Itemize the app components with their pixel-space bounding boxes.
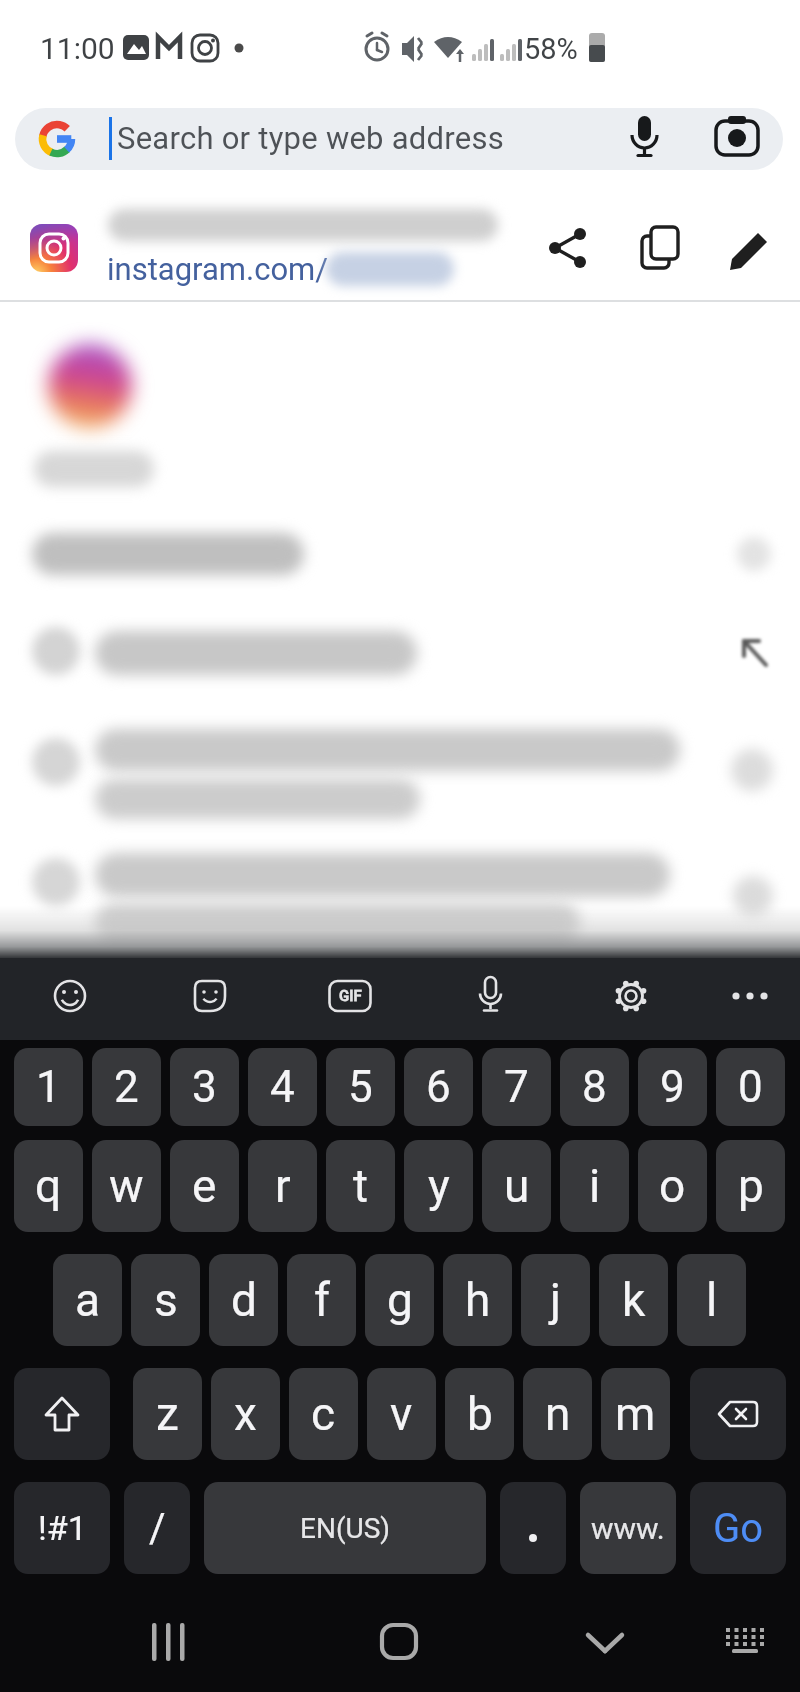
staticText: w <box>109 1159 144 1213</box>
button[interactable]: 5 <box>326 1048 395 1126</box>
button[interactable] <box>574 1612 638 1672</box>
staticText: instagram.com/ <box>107 251 329 287</box>
button[interactable]: j <box>521 1254 590 1346</box>
button[interactable] <box>15 108 783 170</box>
staticText: y <box>428 1159 450 1213</box>
button[interactable]: k <box>599 1254 668 1346</box>
button[interactable]: y <box>404 1140 473 1232</box>
button[interactable]: 1 <box>14 1048 83 1126</box>
button[interactable] <box>718 1618 774 1668</box>
button[interactable] <box>474 976 508 1016</box>
staticText: d <box>231 1273 257 1327</box>
button[interactable]: r <box>248 1140 317 1232</box>
button[interactable] <box>95 853 670 897</box>
button[interactable]: i <box>560 1140 629 1232</box>
staticText: g <box>387 1273 413 1327</box>
button[interactable]: 0 <box>716 1048 785 1126</box>
button[interactable]: x <box>211 1368 280 1460</box>
button[interactable]: e <box>170 1140 239 1232</box>
staticText: Go <box>713 1505 764 1552</box>
button[interactable]: 4 <box>248 1048 317 1126</box>
staticText: 2 <box>114 1061 139 1113</box>
button[interactable]: 7 <box>482 1048 551 1126</box>
button[interactable] <box>52 978 88 1014</box>
button[interactable]: www. <box>580 1482 676 1574</box>
staticText: 9 <box>660 1061 685 1113</box>
button[interactable]: n <box>523 1368 592 1460</box>
staticText: x <box>234 1387 257 1441</box>
button[interactable] <box>95 729 680 771</box>
staticText: n <box>545 1387 571 1441</box>
staticText: EN(US) <box>300 1512 391 1545</box>
button[interactable] <box>735 632 775 672</box>
button[interactable]: l <box>677 1254 746 1346</box>
button[interactable]: o <box>638 1140 707 1232</box>
staticText: f <box>314 1273 330 1327</box>
button[interactable]: f <box>287 1254 356 1346</box>
staticText: s <box>154 1273 178 1327</box>
button[interactable] <box>613 978 649 1014</box>
button[interactable] <box>95 631 417 675</box>
button[interactable]: w <box>92 1140 161 1232</box>
staticText: GIF <box>339 987 362 1005</box>
staticText: 0 <box>738 1061 763 1113</box>
staticText: www. <box>591 1511 665 1546</box>
staticText: j <box>550 1273 562 1327</box>
staticText: / <box>149 1505 166 1552</box>
staticText: h <box>465 1273 491 1327</box>
button[interactable] <box>690 1368 786 1460</box>
staticText: Search or type web address <box>117 120 504 156</box>
staticText: v <box>390 1387 413 1441</box>
button[interactable] <box>628 114 662 162</box>
button[interactable]: GIF <box>328 978 372 1014</box>
staticText: 6 <box>426 1061 451 1113</box>
staticText: l <box>706 1273 718 1327</box>
button[interactable] <box>192 978 228 1014</box>
button[interactable]: s <box>131 1254 200 1346</box>
button[interactable] <box>14 1368 110 1460</box>
button[interactable]: d <box>209 1254 278 1346</box>
button[interactable]: q <box>14 1140 83 1232</box>
button[interactable]: t <box>326 1140 395 1232</box>
button[interactable] <box>729 225 775 271</box>
staticText: b <box>467 1387 493 1441</box>
button[interactable]: Go <box>690 1482 786 1574</box>
button[interactable]: 8 <box>560 1048 629 1126</box>
staticText: 11:00 <box>40 31 115 66</box>
button[interactable] <box>138 1612 202 1672</box>
staticText: 5 <box>348 1061 373 1113</box>
staticText: p <box>738 1159 764 1213</box>
button[interactable] <box>500 1482 566 1574</box>
button[interactable]: u <box>482 1140 551 1232</box>
button[interactable] <box>368 1612 430 1672</box>
button[interactable]: 2 <box>92 1048 161 1126</box>
button[interactable]: p <box>716 1140 785 1232</box>
staticText: !#1 <box>38 1508 87 1548</box>
button[interactable]: / <box>124 1482 190 1574</box>
button[interactable]: 6 <box>404 1048 473 1126</box>
staticText: q <box>35 1159 62 1213</box>
button[interactable]: m <box>601 1368 670 1460</box>
button[interactable]: b <box>445 1368 514 1460</box>
button[interactable] <box>638 226 682 270</box>
staticText: i <box>589 1159 601 1213</box>
staticText: 3 <box>192 1061 217 1113</box>
button[interactable]: h <box>443 1254 512 1346</box>
button[interactable] <box>728 988 772 1004</box>
button[interactable]: g <box>365 1254 434 1346</box>
staticText: k <box>622 1273 646 1327</box>
staticText: o <box>659 1159 686 1213</box>
button[interactable] <box>547 227 589 269</box>
button[interactable]: 3 <box>170 1048 239 1126</box>
button[interactable] <box>714 115 762 157</box>
staticText: a <box>75 1273 101 1327</box>
staticText: c <box>311 1387 336 1441</box>
button[interactable]: v <box>367 1368 436 1460</box>
button[interactable]: !#1 <box>14 1482 110 1574</box>
button[interactable]: EN(US) <box>204 1482 486 1574</box>
button[interactable]: z <box>133 1368 202 1460</box>
button[interactable]: 9 <box>638 1048 707 1126</box>
staticText: u <box>504 1159 530 1213</box>
button[interactable]: c <box>289 1368 358 1460</box>
button[interactable]: a <box>53 1254 122 1346</box>
